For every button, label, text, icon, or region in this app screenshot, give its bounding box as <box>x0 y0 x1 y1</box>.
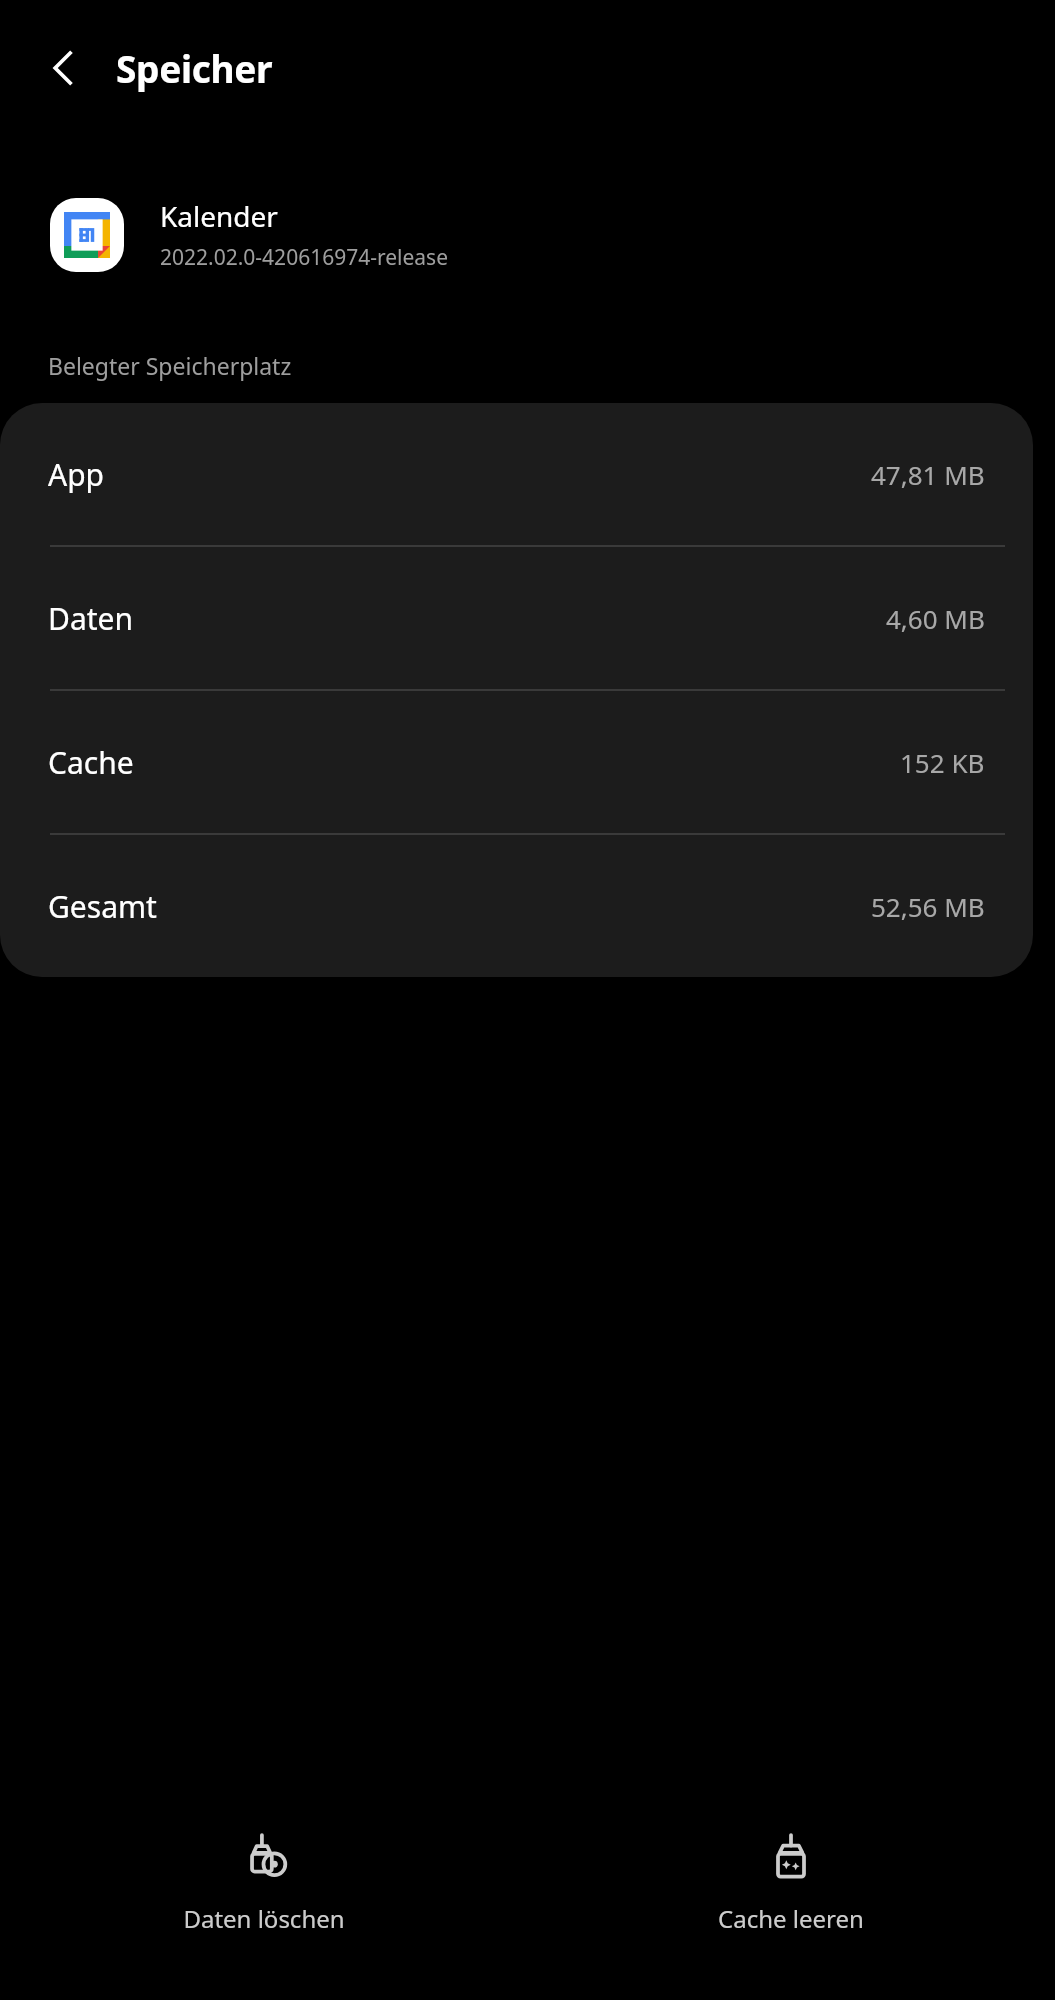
staticText: Speicher <box>116 43 273 93</box>
staticText: Belegter Speicherplatz <box>48 350 292 381</box>
staticText: Kalender <box>160 197 278 235</box>
button[interactable]: Daten <box>0 547 1033 689</box>
staticText: 4,60 MB <box>886 601 985 636</box>
staticText: 2022.02.0-420616974-release <box>160 243 449 272</box>
staticText: Daten <box>48 598 134 639</box>
button[interactable]: Cache <box>0 691 1033 833</box>
staticText: 47,81 MB <box>871 457 985 492</box>
staticText: 152 KB <box>900 745 985 780</box>
staticText: App <box>48 454 105 495</box>
button[interactable]: Back <box>28 32 100 104</box>
staticText: 52,56 MB <box>871 889 985 924</box>
staticText: Gesamt <box>48 886 157 927</box>
staticText: Daten löschen <box>183 1902 345 1935</box>
staticText: Cache leeren <box>718 1902 864 1935</box>
button[interactable]: Gesamt <box>0 835 1033 977</box>
button[interactable]: App <box>0 403 1033 545</box>
staticText: Cache <box>48 742 134 783</box>
button[interactable]: Cache leeren <box>527 1810 1055 2000</box>
button[interactable]: Daten löschen <box>0 1810 527 2000</box>
